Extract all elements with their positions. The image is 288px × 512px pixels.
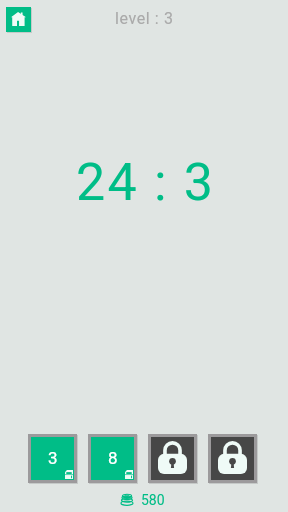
staticText: 3 (48, 448, 58, 468)
staticText: 24 : 3 (76, 152, 216, 208)
button[interactable]: 3 (31, 437, 74, 480)
button[interactable]: 8 (91, 437, 134, 480)
button[interactable]: Home (6, 7, 31, 32)
button[interactable]: Locked level (211, 437, 254, 480)
staticText: 8 (108, 448, 118, 468)
staticText: 580 (141, 492, 165, 508)
staticText: level : 3 (115, 9, 174, 28)
button[interactable]: Locked level (151, 437, 194, 480)
